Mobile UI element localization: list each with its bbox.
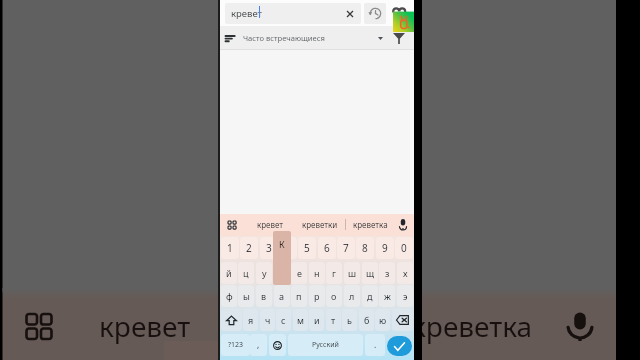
button[interactable]: о [326, 285, 342, 307]
button[interactable]: я [243, 309, 258, 331]
staticText: креветки [302, 219, 338, 230]
button[interactable]: 3 [260, 237, 278, 259]
staticText: у [262, 267, 267, 279]
button[interactable]: т [326, 309, 341, 331]
button[interactable]: ф [221, 285, 237, 307]
staticText: 6 [324, 241, 330, 255]
button[interactable]: щ [362, 262, 378, 284]
staticText: с [281, 314, 286, 326]
button[interactable]: 9 [376, 237, 394, 259]
button[interactable]: Switch keyboard [222, 214, 242, 235]
button[interactable]: 2 [240, 237, 258, 259]
staticText: л [349, 290, 355, 302]
staticText: е [297, 267, 302, 279]
staticText: ц [243, 267, 249, 279]
button[interactable]: 0 [395, 237, 413, 259]
staticText: 3 [266, 241, 272, 255]
staticText: 7 [343, 241, 349, 255]
button[interactable]: з [379, 262, 395, 284]
button[interactable]: Emoji [269, 334, 286, 356]
button[interactable]: 7 [337, 237, 355, 259]
button[interactable]: и [309, 309, 324, 331]
button[interactable]: ?123 [221, 334, 250, 356]
staticText: ь [347, 314, 352, 326]
button[interactable]: Voice input [392, 214, 413, 235]
staticText: 5 [304, 241, 310, 255]
staticText: д [367, 290, 373, 302]
button[interactable]: м [293, 309, 308, 331]
button[interactable] [225, 3, 361, 24]
staticText: х [403, 267, 408, 279]
staticText: Русский [312, 340, 339, 350]
staticText: я [248, 314, 254, 326]
staticText: в [261, 290, 267, 302]
button[interactable]: е [291, 262, 307, 284]
button[interactable]: 5 [298, 237, 316, 259]
button[interactable]: н [309, 262, 325, 284]
button[interactable]: д [362, 285, 378, 307]
button[interactable]: б [359, 309, 374, 331]
staticText: а [279, 290, 285, 302]
staticText: ш [348, 267, 357, 279]
staticText: . [374, 339, 377, 351]
staticText: 8 [362, 241, 368, 255]
button[interactable]: Часто встречающиеся [220, 26, 388, 49]
button[interactable]: кревет [245, 214, 295, 235]
button[interactable]: а [274, 285, 290, 307]
button[interactable]: . [365, 334, 385, 356]
button[interactable]: ш [344, 262, 360, 284]
button[interactable]: Filter [386, 26, 412, 51]
button[interactable]: Enter [387, 336, 412, 356]
staticText: г [332, 267, 336, 279]
staticText: кревет [231, 7, 262, 20]
staticText: 1 [227, 241, 233, 255]
button[interactable]: г [326, 262, 342, 284]
staticText: кревет [99, 307, 191, 345]
button[interactable]: п [291, 285, 307, 307]
staticText: з [385, 267, 390, 279]
staticText: о [331, 290, 337, 302]
staticText: Часто встречающиеся [243, 33, 325, 43]
button[interactable]: в [256, 285, 272, 307]
staticText: 0 [401, 241, 407, 255]
button[interactable]: креветки [295, 214, 345, 235]
button[interactable]: ю [375, 309, 390, 331]
button[interactable]: ь [342, 309, 357, 331]
staticText: р [314, 290, 320, 302]
staticText: ы [243, 290, 250, 302]
button[interactable]: р [309, 285, 325, 307]
button[interactable]: 8 [356, 237, 374, 259]
button[interactable]: л [344, 285, 360, 307]
button[interactable]: , [250, 334, 267, 356]
staticText: креветка [411, 307, 533, 345]
button[interactable]: ж [379, 285, 395, 307]
button[interactable]: 1 [221, 237, 239, 259]
button[interactable]: 6 [318, 237, 336, 259]
staticText: ж [384, 290, 391, 302]
staticText: й [226, 267, 232, 279]
button[interactable]: ы [238, 285, 254, 307]
staticText: ф [226, 290, 233, 302]
button[interactable]: Clear search [340, 3, 360, 24]
button[interactable]: у [256, 262, 272, 284]
button[interactable]: Search history [364, 3, 386, 24]
button[interactable]: ц [238, 262, 254, 284]
staticText: 9 [382, 241, 388, 255]
button[interactable]: Shift [221, 309, 242, 331]
button[interactable]: Backspace [392, 309, 413, 331]
button[interactable]: ч [260, 309, 275, 331]
button[interactable]: Русский [288, 334, 363, 356]
button[interactable]: Open shop [393, 7, 416, 32]
staticText: и [314, 314, 320, 326]
button[interactable]: с [276, 309, 291, 331]
staticText: кревет [257, 219, 284, 230]
button[interactable]: х [397, 262, 413, 284]
button[interactable]: 4 [279, 237, 297, 259]
button[interactable]: й [221, 262, 237, 284]
staticText: п [296, 290, 302, 302]
button[interactable]: э [397, 285, 413, 307]
staticText: м [297, 314, 304, 326]
button[interactable]: креветка [345, 214, 395, 235]
